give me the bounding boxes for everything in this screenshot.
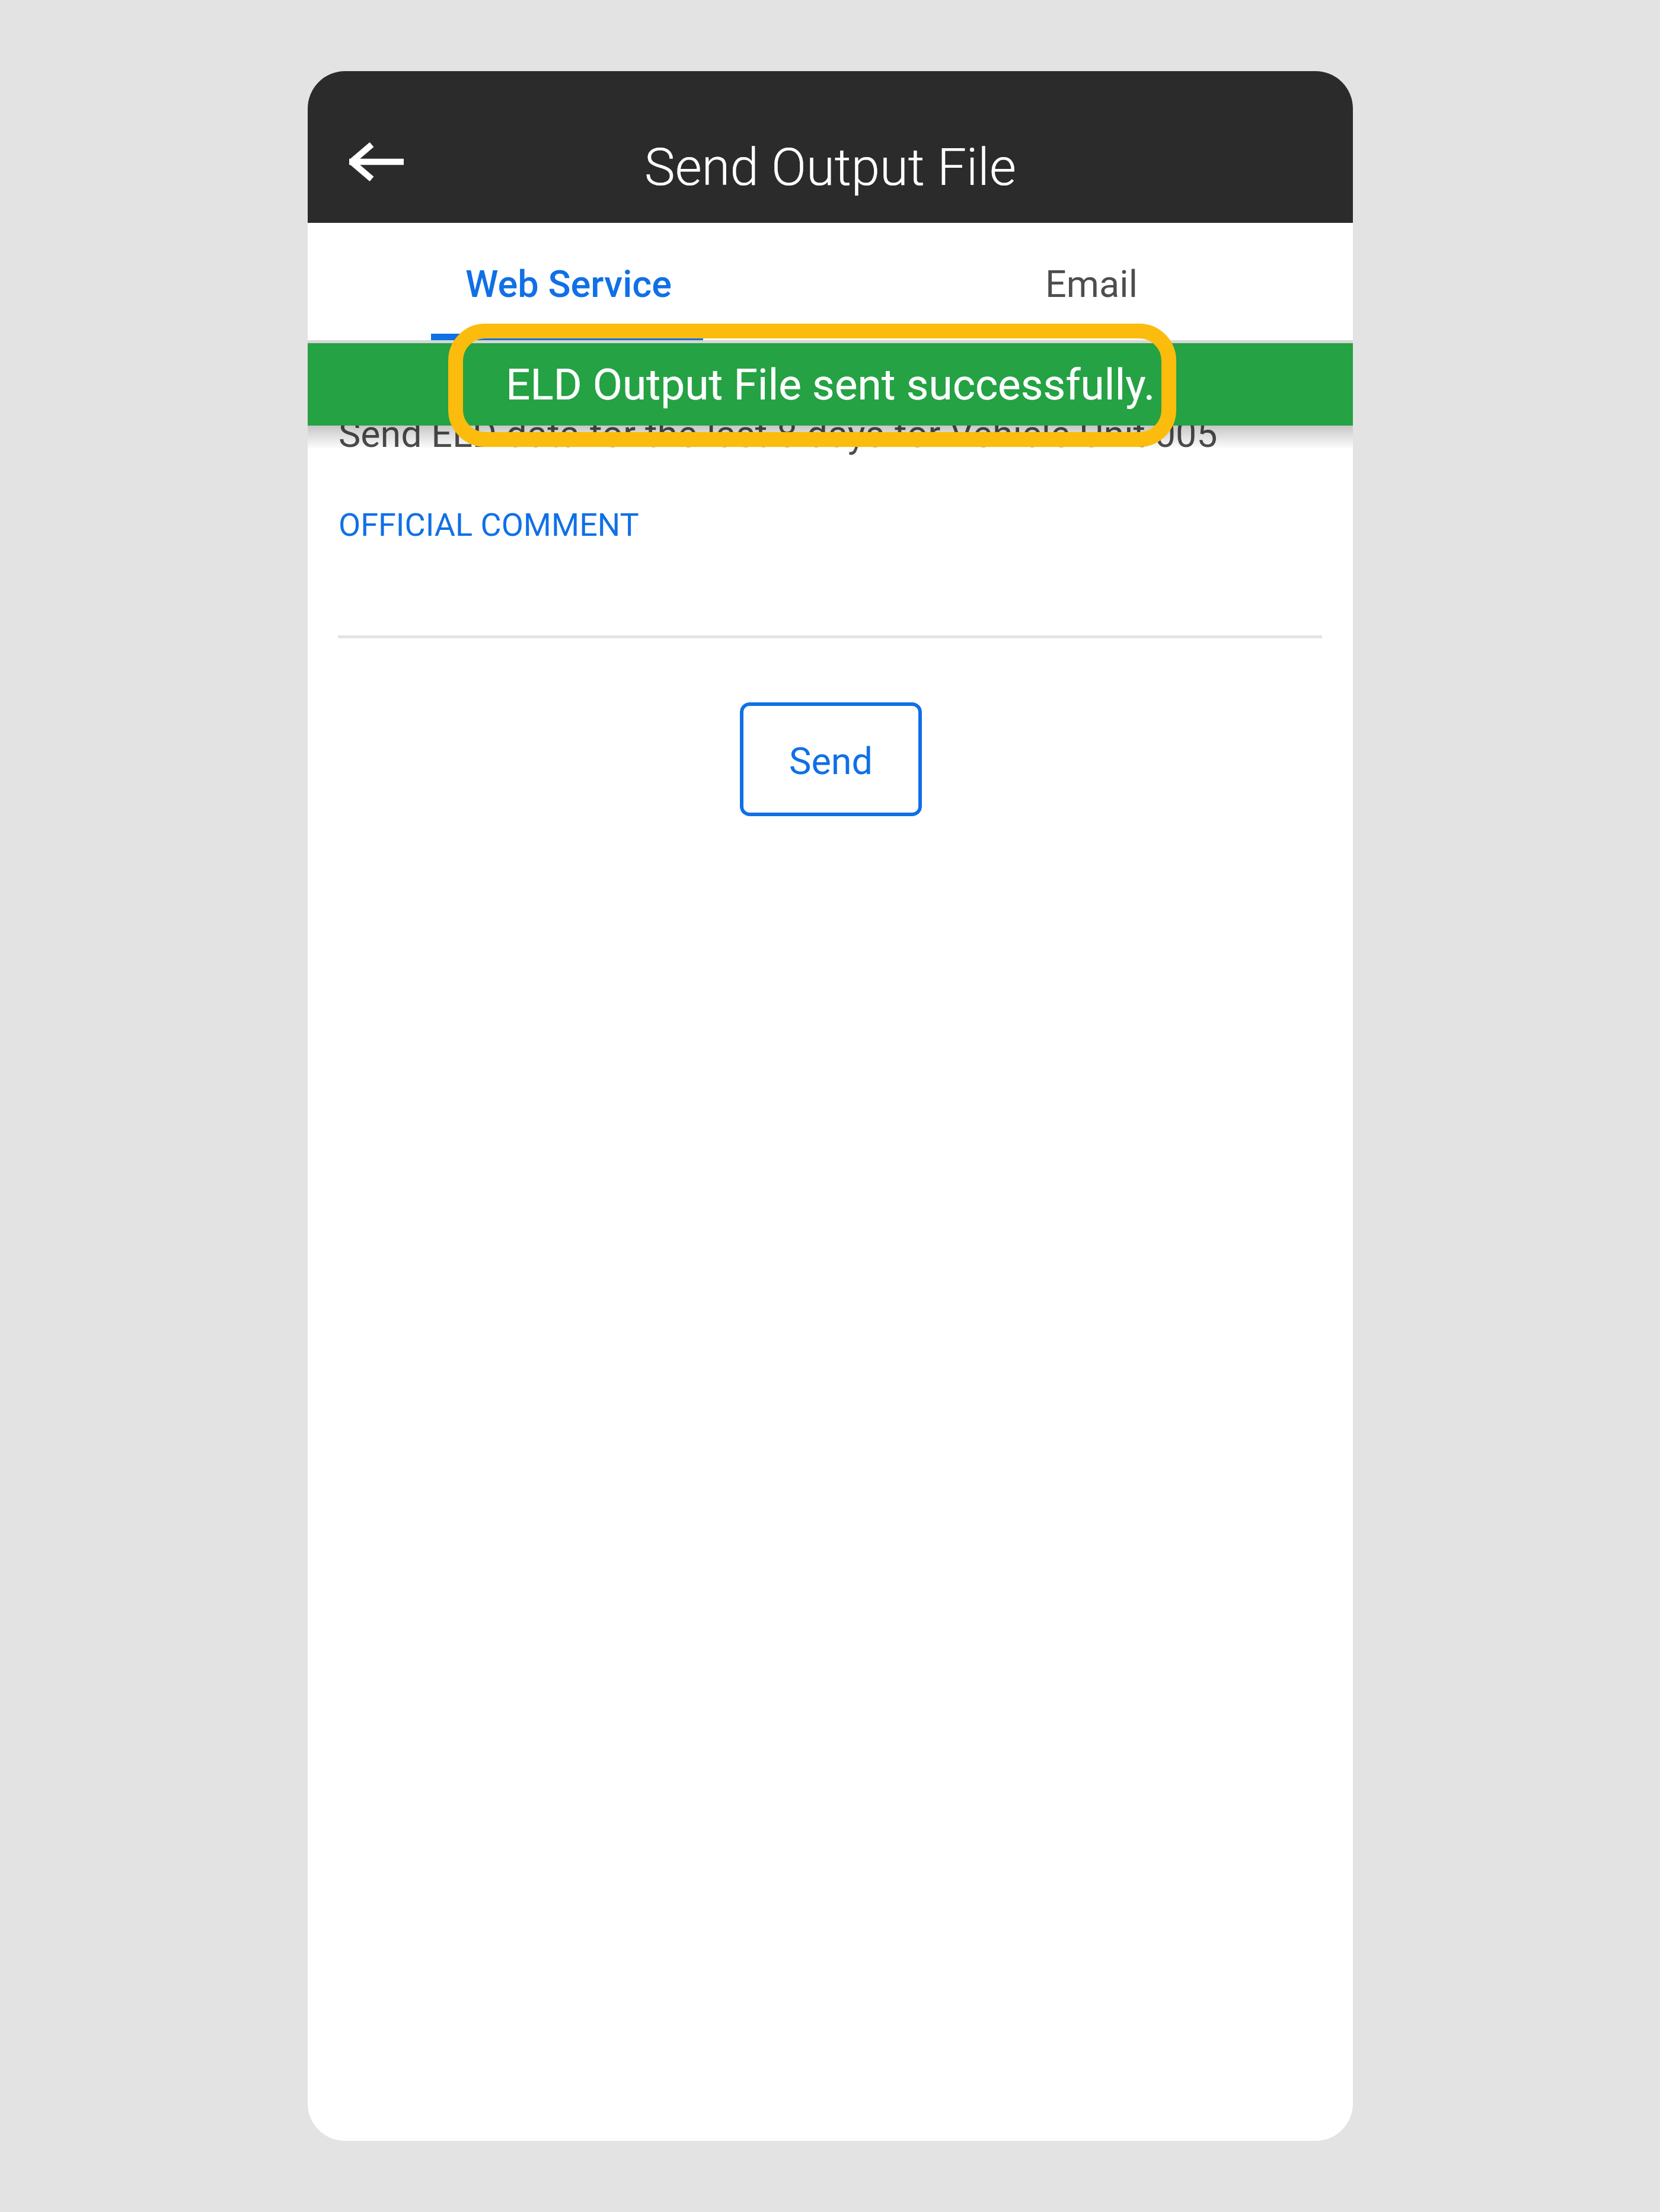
- staticText: Email: [1045, 263, 1138, 306]
- button[interactable]: Back: [339, 124, 414, 200]
- button[interactable]: ELD Output File sent successfully.: [308, 343, 1353, 426]
- other: Highlighted message: [448, 324, 1176, 447]
- staticText: OFFICIAL COMMENT: [339, 506, 639, 544]
- button[interactable]: Send: [740, 702, 922, 816]
- button[interactable]: Email: [830, 223, 1353, 343]
- button[interactable]: Web Service: [308, 223, 830, 343]
- staticText: Send ELD data for the last 8 days for Ve…: [339, 413, 1218, 456]
- staticText: Send: [789, 740, 873, 784]
- staticText: ELD Output File sent successfully.: [506, 359, 1155, 410]
- staticText: Web Service: [465, 263, 672, 306]
- staticText: Send Output File: [308, 137, 1353, 197]
